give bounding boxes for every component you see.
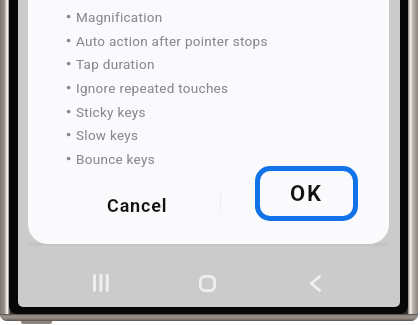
button[interactable]: Home xyxy=(179,257,235,307)
button[interactable]: OK xyxy=(255,166,358,221)
staticText: Auto action after pointer stops xyxy=(76,33,268,49)
staticText: Bounce keys xyxy=(76,151,155,167)
staticText: Slow keys xyxy=(76,127,139,143)
staticText: Cancel xyxy=(107,195,168,216)
staticText: OK xyxy=(290,181,323,207)
staticText: Sticky keys xyxy=(76,104,146,120)
staticText: Tap duration xyxy=(76,56,155,72)
staticText: Ignore repeated touches xyxy=(76,80,229,96)
button[interactable]: Recent apps xyxy=(74,257,130,307)
button[interactable]: Back xyxy=(287,257,343,307)
staticText: Magnification xyxy=(76,9,163,25)
button[interactable]: Cancel xyxy=(83,182,192,228)
